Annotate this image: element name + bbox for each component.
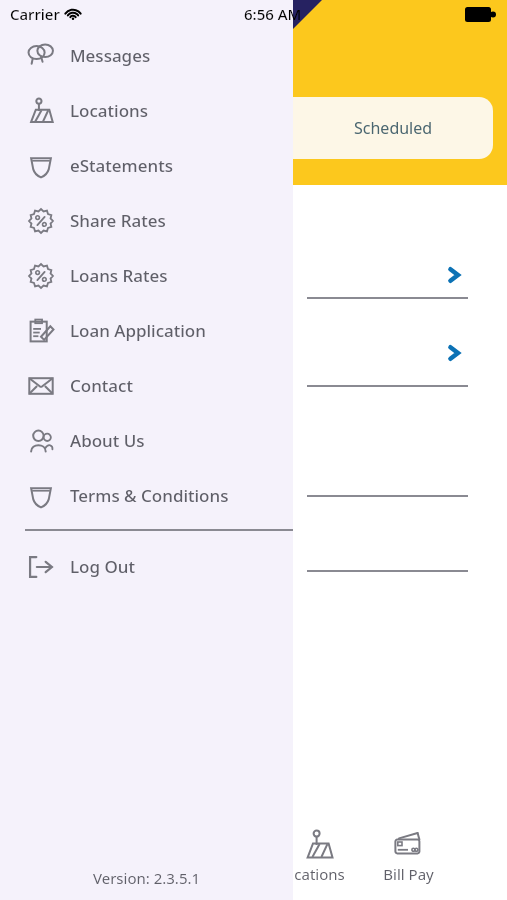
button[interactable]: Contact bbox=[0, 358, 293, 413]
button[interactable]: Terms & Conditions bbox=[0, 468, 293, 523]
button[interactable]: About Us bbox=[0, 413, 293, 468]
staticText: cations bbox=[294, 864, 345, 884]
staticText: 6:56 AM bbox=[244, 4, 302, 24]
staticText: About Us bbox=[70, 429, 145, 452]
staticText: eStatements bbox=[70, 154, 173, 177]
button[interactable]: Log Out bbox=[0, 539, 293, 594]
staticText: Log Out bbox=[70, 555, 135, 578]
button[interactable]: Loans Rates bbox=[0, 248, 293, 303]
button[interactable]: Open detail bbox=[293, 333, 493, 373]
button[interactable]: Scheduled bbox=[293, 97, 493, 159]
button[interactable]: Locations bbox=[0, 83, 293, 138]
staticText: Terms & Conditions bbox=[70, 484, 229, 507]
button[interactable]: Bill Pay bbox=[358, 814, 458, 900]
staticText: Contact bbox=[70, 374, 133, 397]
button[interactable]: eStatements bbox=[0, 138, 293, 193]
button[interactable]: Open detail bbox=[293, 255, 493, 295]
button[interactable]: cations bbox=[280, 814, 358, 900]
staticText: Scheduled bbox=[354, 117, 433, 139]
staticText: Loans Rates bbox=[70, 264, 168, 287]
staticText: Share Rates bbox=[70, 209, 166, 232]
button[interactable]: Messages bbox=[0, 28, 293, 83]
staticText: Messages bbox=[70, 44, 151, 67]
staticText: Version: 2.3.5.1 bbox=[93, 868, 201, 888]
staticText: Bill Pay bbox=[383, 864, 434, 884]
staticText: Locations bbox=[70, 99, 148, 122]
staticText: Loan Application bbox=[70, 319, 206, 342]
button[interactable]: Share Rates bbox=[0, 193, 293, 248]
staticText: Carrier bbox=[10, 4, 60, 24]
button[interactable]: Loan Application bbox=[0, 303, 293, 358]
